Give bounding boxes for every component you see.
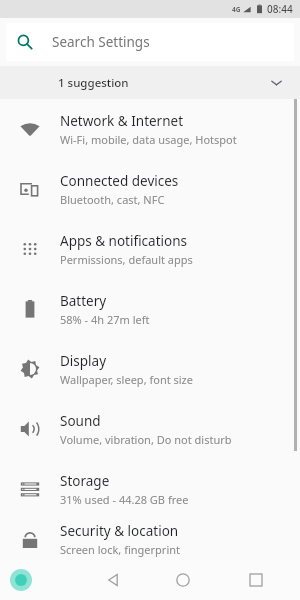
staticText: Security & location [60,522,179,540]
button[interactable]: Battery [0,279,300,339]
other: Expand suggestions [270,76,283,89]
staticText: Volume, vibration, Do not disturb [60,432,232,447]
staticText: 4G [232,5,241,14]
staticText: Permissions, default apps [60,252,193,267]
staticText: Sound [60,412,101,430]
button[interactable]: Search Settings [6,23,294,61]
staticText: Connected devices [60,172,179,190]
staticText: Network & Internet [60,112,184,130]
button[interactable]: Assistant [4,563,38,597]
button[interactable]: Apps & notifications [0,219,300,279]
button[interactable]: Display [0,339,300,399]
button[interactable]: 1 suggestion [0,66,300,99]
button[interactable]: Connected devices [0,159,300,219]
button[interactable]: Storage [0,459,300,519]
staticText: Storage [60,472,110,490]
staticText: Display [60,352,107,370]
staticText: Bluetooth, cast, NFC [60,192,165,207]
button[interactable]: Back [95,562,131,598]
button[interactable]: Network & Internet [0,99,300,159]
staticText: Search Settings [52,33,150,51]
button[interactable]: Security & location [0,519,300,560]
staticText: Wallpaper, sleep, font size [60,372,193,387]
staticText: Screen lock, fingerprint [60,542,181,557]
staticText: 1 suggestion [58,75,129,91]
button[interactable]: Sound [0,399,300,459]
staticText: 31% used - 44.28 GB free [60,492,189,507]
staticText: Apps & notifications [60,232,187,250]
button[interactable]: Recent apps [238,562,274,598]
staticText: Wi-Fi, mobile, data usage, Hotspot [60,132,237,147]
staticText: 08:44 [267,2,293,16]
staticText: Battery [60,292,107,310]
staticText: 58% - 4h 27m left [60,312,150,327]
button[interactable]: Home [165,562,201,598]
